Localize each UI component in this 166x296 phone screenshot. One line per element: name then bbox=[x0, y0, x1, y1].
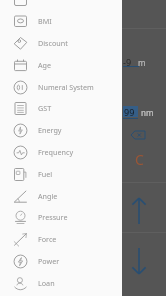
staticText: GST bbox=[38, 103, 52, 113]
button[interactable]: Force bbox=[0, 228, 122, 250]
staticText: Loan bbox=[38, 278, 55, 288]
staticText: Force bbox=[38, 234, 57, 244]
button[interactable]: GST bbox=[0, 97, 122, 119]
button[interactable]: Discount bbox=[0, 32, 122, 54]
staticText: Discount bbox=[38, 38, 68, 48]
button[interactable]: Fuel bbox=[0, 163, 122, 185]
staticText: Numeral System bbox=[38, 82, 94, 92]
button[interactable]: Backspace bbox=[130, 130, 146, 140]
staticText: Energy bbox=[38, 125, 62, 135]
button[interactable]: Pressure bbox=[0, 206, 122, 228]
staticText: BMI bbox=[38, 16, 52, 26]
button[interactable]: Age bbox=[0, 54, 122, 76]
button[interactable]: Up bbox=[128, 194, 150, 228]
button[interactable]: Power bbox=[0, 250, 122, 272]
staticText: C bbox=[135, 150, 144, 168]
button[interactable]: C bbox=[130, 150, 148, 168]
staticText: -9 bbox=[123, 56, 132, 68]
button[interactable]: Down bbox=[128, 244, 150, 278]
staticText: Frequency bbox=[38, 147, 74, 157]
button[interactable]: BMI bbox=[0, 10, 122, 32]
staticText: nm bbox=[141, 107, 154, 118]
staticText: Angle bbox=[38, 191, 58, 201]
button[interactable]: Energy bbox=[0, 119, 122, 141]
staticText: Fuel bbox=[38, 169, 53, 179]
staticText: Age bbox=[38, 60, 52, 70]
staticText: 99 bbox=[124, 106, 135, 118]
button[interactable]: Numeral System bbox=[0, 76, 122, 98]
button[interactable] bbox=[0, 0, 122, 10]
staticText: m bbox=[138, 57, 146, 68]
staticText: Pressure bbox=[38, 212, 68, 222]
button[interactable]: Angle bbox=[0, 185, 122, 207]
staticText: Power bbox=[38, 256, 60, 266]
button[interactable]: Loan bbox=[0, 272, 122, 294]
button[interactable]: Frequency bbox=[0, 141, 122, 163]
